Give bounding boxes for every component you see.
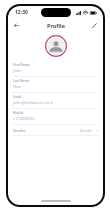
- button[interactable]: Profile photo: [45, 35, 67, 57]
- button[interactable]: Mobile: [13, 109, 98, 125]
- staticText: Last Name: [13, 79, 30, 83]
- staticText: Email: [13, 95, 22, 99]
- staticText: Gender: [80, 128, 93, 133]
- button[interactable]: Back: [12, 21, 21, 30]
- button[interactable]: Last Name: [13, 77, 98, 93]
- staticText: +77450602: [13, 116, 35, 122]
- button[interactable]: First Name: [13, 61, 98, 77]
- staticText: 12:30: [15, 9, 28, 16]
- button[interactable]: Email: [13, 93, 98, 109]
- staticText: Profile: [47, 22, 65, 29]
- button[interactable]: Edit: [90, 21, 99, 30]
- staticText: Mobile: [13, 111, 24, 115]
- staticText: Doe: [13, 84, 21, 90]
- staticText: john@indiacom.com: [13, 100, 54, 106]
- staticText: First Name: [13, 63, 30, 67]
- staticText: Gender: [13, 128, 26, 133]
- staticText: John: [13, 68, 22, 74]
- button[interactable]: Gender: [13, 126, 98, 136]
